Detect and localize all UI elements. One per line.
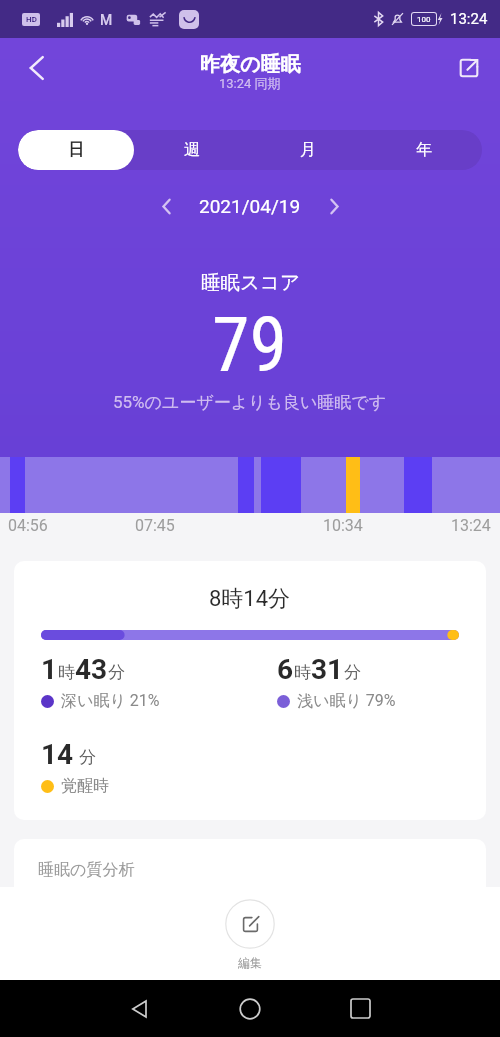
staticText: 13:24 同期 xyxy=(219,75,281,91)
staticText: 100 xyxy=(417,15,431,24)
staticText: 13:24 xyxy=(451,516,491,535)
staticText: 覚醒時 xyxy=(61,776,109,796)
staticText: 昨夜の睡眠 xyxy=(200,52,301,77)
staticText: 8時14分 xyxy=(209,585,291,613)
staticText: 10:34 xyxy=(323,516,363,535)
staticText: 6 xyxy=(277,653,294,686)
staticText: 週 xyxy=(184,140,200,160)
staticText: 睡眠の質分析 xyxy=(38,860,135,880)
staticText: 分 xyxy=(108,662,125,683)
button[interactable]: Recents xyxy=(305,980,415,1037)
staticText: 時 xyxy=(294,662,311,683)
button[interactable]: 年 xyxy=(366,130,482,170)
button[interactable]: 週 xyxy=(134,130,250,170)
staticText: 79 xyxy=(212,300,288,389)
staticText: 睡眠スコア xyxy=(201,270,300,295)
staticText: 深い眠り 21% xyxy=(61,691,160,711)
staticText: 1 xyxy=(41,653,58,686)
staticText: 日 xyxy=(68,140,84,160)
staticText: 浅い眠り 79% xyxy=(297,691,396,711)
button[interactable]: Back xyxy=(14,45,60,91)
staticText: 31 xyxy=(311,653,344,686)
staticText: 07:45 xyxy=(135,516,175,535)
staticText: 時 xyxy=(58,662,75,683)
staticText: 月 xyxy=(300,140,316,160)
button[interactable]: 日 xyxy=(18,130,134,170)
staticText: HD xyxy=(26,15,37,24)
staticText: 2021/04/19 xyxy=(199,195,301,217)
button[interactable]: Previous day xyxy=(133,189,199,223)
staticText: 分 xyxy=(344,662,361,683)
staticText: 43 xyxy=(75,653,108,686)
button[interactable]: Back xyxy=(85,980,195,1037)
staticText: 55%のユーザーよりも良い睡眠です xyxy=(113,392,387,413)
staticText: M xyxy=(100,12,113,28)
button[interactable]: Home xyxy=(195,980,305,1037)
button[interactable]: Next day xyxy=(301,189,367,223)
staticText: 04:56 xyxy=(8,516,48,535)
staticText: 分 xyxy=(79,747,96,768)
staticText: 編集 xyxy=(238,955,262,970)
staticText: 14 xyxy=(41,738,74,771)
button[interactable]: 編集 xyxy=(225,899,275,970)
staticText: 13:24 xyxy=(450,10,488,28)
button[interactable]: Share xyxy=(446,45,492,91)
staticText: 年 xyxy=(416,140,432,160)
button[interactable]: 月 xyxy=(250,130,366,170)
